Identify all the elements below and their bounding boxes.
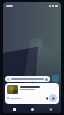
button[interactable]: Play [49, 94, 57, 102]
button[interactable]: Previous [44, 96, 48, 100]
button[interactable]: Back [43, 105, 57, 113]
button[interactable]: App icon [52, 75, 59, 82]
button[interactable]: Recents [7, 105, 21, 113]
button[interactable] [5, 76, 50, 82]
button[interactable]: Previous [5, 83, 59, 104]
button[interactable]: Home [25, 105, 39, 113]
